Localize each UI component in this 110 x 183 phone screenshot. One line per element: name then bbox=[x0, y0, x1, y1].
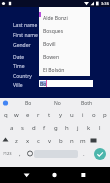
staticText: Bo bbox=[40, 81, 47, 88]
staticText: p bbox=[103, 111, 107, 119]
staticText: j bbox=[77, 124, 79, 132]
button[interactable]: e bbox=[22, 108, 33, 121]
staticText: First name bbox=[13, 32, 38, 39]
staticText: Bovill bbox=[43, 41, 56, 48]
staticText: El Bolsón bbox=[43, 67, 65, 74]
staticText: z bbox=[15, 137, 18, 145]
button[interactable]: m bbox=[77, 134, 88, 147]
button[interactable]: c bbox=[33, 134, 44, 147]
staticText: b bbox=[59, 137, 63, 145]
button[interactable]: Alde Bonzi bbox=[39, 12, 90, 25]
staticText: y bbox=[59, 111, 63, 119]
button[interactable]: El Bolsón bbox=[39, 64, 90, 77]
staticText: Last name bbox=[13, 22, 38, 29]
staticText: ?123 bbox=[3, 151, 12, 156]
staticText: Ville bbox=[13, 82, 23, 89]
button[interactable]: . bbox=[78, 147, 90, 160]
staticText: k bbox=[87, 124, 91, 132]
staticText: Gender bbox=[13, 42, 31, 49]
button[interactable]: a bbox=[6, 121, 17, 134]
staticText: v bbox=[48, 137, 52, 145]
button[interactable]: Recents bbox=[73, 167, 110, 183]
button[interactable]: x bbox=[22, 134, 33, 147]
staticText: No bbox=[54, 100, 61, 107]
staticText: c bbox=[37, 137, 40, 145]
button[interactable]: Bovill bbox=[39, 38, 90, 51]
button[interactable]: r bbox=[33, 108, 44, 121]
button[interactable]: h bbox=[61, 121, 72, 134]
button[interactable]: Bosques bbox=[39, 25, 90, 38]
button[interactable]: w bbox=[11, 108, 22, 121]
staticText: r bbox=[37, 111, 40, 119]
button[interactable]: u bbox=[66, 108, 77, 121]
staticText: a bbox=[10, 124, 14, 132]
button[interactable]: Backspace bbox=[88, 134, 99, 147]
staticText: , bbox=[19, 150, 21, 158]
staticText: g bbox=[54, 124, 58, 132]
staticText: u bbox=[70, 111, 74, 119]
staticText: Bosques bbox=[43, 28, 64, 35]
staticText: Country bbox=[13, 73, 32, 80]
staticText: Both bbox=[81, 100, 93, 107]
button[interactable]: b bbox=[55, 134, 66, 147]
staticText: q bbox=[4, 111, 8, 119]
staticText: w bbox=[14, 111, 19, 119]
button[interactable]: l bbox=[94, 121, 105, 134]
button[interactable]: Home bbox=[36, 167, 73, 183]
staticText: t bbox=[48, 111, 51, 119]
button[interactable]: j bbox=[72, 121, 83, 134]
button[interactable]: n bbox=[66, 134, 77, 147]
button[interactable]: t bbox=[44, 108, 55, 121]
staticText: o bbox=[92, 111, 96, 119]
button[interactable]: g bbox=[50, 121, 61, 134]
button[interactable]: s bbox=[17, 121, 28, 134]
staticText: x bbox=[26, 137, 30, 145]
staticText: h bbox=[65, 124, 69, 132]
button[interactable]: k bbox=[83, 121, 94, 134]
staticText: s bbox=[21, 124, 24, 132]
staticText: Alde Bonzi bbox=[43, 15, 68, 22]
button[interactable]: d bbox=[28, 121, 39, 134]
staticText: Date bbox=[13, 54, 25, 61]
button[interactable]: ?123 bbox=[0, 147, 14, 160]
button[interactable]: i bbox=[77, 108, 88, 121]
button[interactable]: f bbox=[39, 121, 50, 134]
staticText: i bbox=[82, 111, 84, 119]
button[interactable]: o bbox=[88, 108, 99, 121]
staticText: Time bbox=[13, 63, 25, 70]
staticText: d bbox=[32, 124, 36, 132]
button[interactable]: y bbox=[55, 108, 66, 121]
staticText: Bowen bbox=[43, 54, 60, 61]
button[interactable]: Back bbox=[0, 167, 36, 183]
button[interactable]: Shift bbox=[0, 134, 11, 147]
button[interactable]: Bowen bbox=[39, 51, 90, 64]
staticText: 3:36 bbox=[101, 1, 109, 6]
button[interactable]: , bbox=[14, 147, 26, 160]
staticText: m bbox=[80, 137, 86, 145]
staticText: l bbox=[99, 124, 101, 132]
staticText: Bo bbox=[25, 100, 32, 107]
staticText: . bbox=[83, 150, 85, 158]
staticText: e bbox=[26, 111, 30, 119]
button[interactable]: Enter bbox=[94, 148, 106, 160]
button[interactable]: Emoji bbox=[26, 147, 34, 160]
button[interactable]: q bbox=[0, 108, 11, 121]
staticText: f bbox=[43, 124, 46, 132]
button[interactable]: p bbox=[99, 108, 110, 121]
staticText: n bbox=[70, 137, 74, 145]
button[interactable]: z bbox=[11, 134, 22, 147]
button[interactable]: v bbox=[44, 134, 55, 147]
